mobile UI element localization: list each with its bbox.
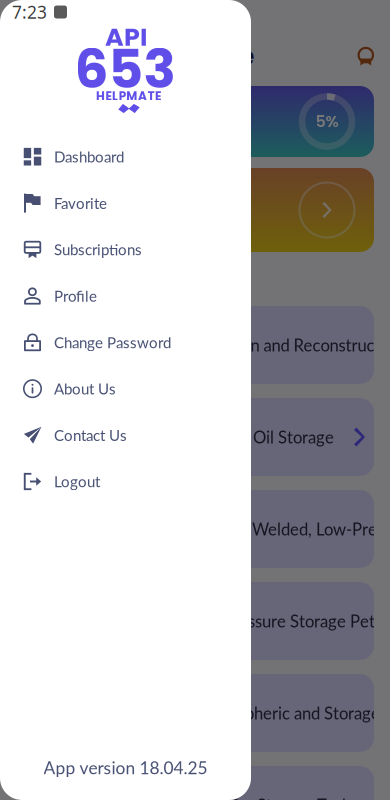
staticText: App version 18.04.25 bbox=[43, 757, 207, 778]
button[interactable]: Contact Us bbox=[0, 412, 251, 458]
button[interactable]: API 620 Design and Construction of Large… bbox=[16, 490, 374, 568]
staticText: H bbox=[96, 88, 105, 104]
staticText: L bbox=[112, 88, 118, 104]
button[interactable]: Favorite bbox=[0, 180, 251, 226]
staticText: 7:23 bbox=[12, 0, 47, 23]
staticText: 5% bbox=[315, 110, 338, 133]
staticText: E bbox=[105, 88, 111, 104]
staticText: E bbox=[155, 88, 161, 104]
button[interactable]: API 650 Welded Steel Tanks for Oil Stora… bbox=[16, 398, 374, 476]
button[interactable]: Change Password bbox=[0, 319, 251, 365]
button[interactable]: About Us bbox=[0, 365, 251, 412]
staticText: Subscriptions bbox=[54, 240, 142, 259]
button[interactable]: API 2000 Venting Atmospheric and Low-Pre… bbox=[16, 582, 374, 660]
staticText: Logout bbox=[54, 472, 100, 491]
staticText: API 653 Helpmate bbox=[18, 37, 254, 75]
button[interactable]: Logout bbox=[0, 458, 251, 505]
staticText: Profile bbox=[54, 287, 97, 305]
staticText: Contact Us bbox=[54, 426, 127, 444]
staticText: API 650 Welded Steel Tanks for Oil Stora… bbox=[19, 427, 334, 447]
staticText: P bbox=[119, 88, 126, 104]
staticText: API bbox=[105, 19, 147, 55]
staticText: API 620 Design and Construction of Large… bbox=[0, 519, 390, 539]
staticText: A bbox=[138, 88, 147, 104]
staticText: API 2000 Venting Atmospheric and Low-Pre… bbox=[0, 611, 390, 631]
staticText: 653 bbox=[74, 32, 175, 106]
staticText: Dashboard bbox=[54, 148, 124, 166]
staticText: M bbox=[126, 88, 137, 104]
staticText: Change Password bbox=[54, 333, 171, 351]
button[interactable]: Dashboard bbox=[0, 133, 251, 180]
button[interactable]: API 653 Tank Inspection, Repair, Alterat… bbox=[16, 306, 374, 384]
button[interactable]: Subscriptions bbox=[0, 226, 251, 273]
button[interactable]: API RP 575 Inspection Practices for Atmo… bbox=[16, 674, 374, 752]
staticText: API RP 2350 Overfill Protection for Stor… bbox=[0, 795, 357, 800]
staticText: API 653 Tank Inspection, Repair, Alterat… bbox=[0, 335, 390, 355]
staticText: API RP 575 Inspection Practices for Atmo… bbox=[0, 703, 390, 723]
staticText: T bbox=[147, 88, 154, 104]
button[interactable]: API RP 2350 Overfill Protection for Stor… bbox=[16, 766, 374, 800]
staticText: About Us bbox=[54, 380, 116, 398]
staticText: Favorite bbox=[54, 194, 107, 212]
button[interactable]: Profile bbox=[0, 273, 251, 319]
